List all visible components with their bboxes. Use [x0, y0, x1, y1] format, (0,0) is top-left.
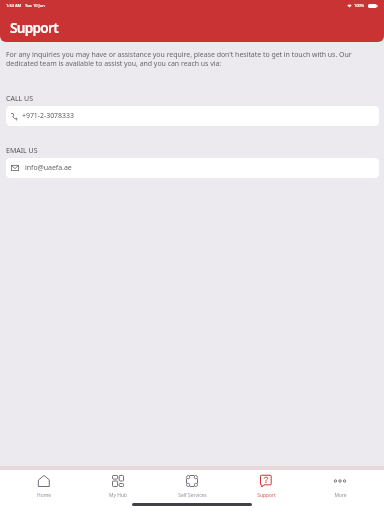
staticText: Tue 10 Jun	[25, 3, 45, 8]
staticText: 100%	[354, 3, 365, 8]
button[interactable]: More	[303, 470, 377, 499]
staticText: Home	[37, 492, 51, 499]
staticText: CALL US	[6, 94, 34, 104]
staticText: Support	[10, 18, 59, 37]
staticText: My Hub	[109, 492, 127, 499]
staticText: info@uaefa.ae	[25, 163, 72, 173]
staticText: Support	[257, 492, 276, 499]
staticText: 1:54 AM	[6, 3, 22, 8]
button[interactable]: My Hub	[81, 470, 155, 499]
staticText: For any inquiries you may have or assist…	[6, 50, 379, 68]
button[interactable]: Home	[7, 470, 81, 499]
staticText: EMAIL US	[6, 146, 38, 156]
button[interactable]: +971-2-3078333	[6, 106, 379, 126]
button[interactable]: info@uaefa.ae	[6, 158, 379, 178]
staticText: Self Services	[178, 492, 207, 499]
button[interactable]: Self Services	[155, 470, 229, 499]
staticText: +971-2-3078333	[22, 111, 74, 121]
staticText: More	[334, 492, 347, 499]
button[interactable]: Support	[229, 470, 303, 499]
